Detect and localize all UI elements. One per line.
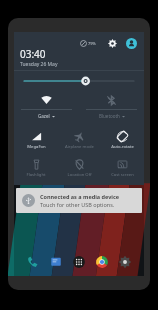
button[interactable]: Chrome	[93, 253, 111, 271]
staticText: Tuesday 26 May	[20, 61, 58, 68]
staticText: Auto-rotate	[111, 144, 134, 150]
button[interactable]: Connected as a media device	[16, 188, 142, 213]
staticText: Gazel	[38, 113, 50, 119]
staticText: 03:40	[20, 47, 46, 61]
button[interactable]: Airplane mode	[58, 127, 101, 155]
staticText: Cast screen	[111, 172, 134, 178]
staticText: Airplane mode	[65, 144, 94, 150]
button[interactable]: Bluetooth	[79, 91, 144, 127]
button[interactable]: Flashlight	[14, 155, 58, 183]
staticText: Connected as a media device	[40, 193, 120, 200]
button[interactable]: Settings	[116, 253, 134, 271]
button[interactable]: Apps	[70, 253, 88, 271]
button[interactable]: Location Off	[58, 155, 101, 183]
button[interactable]: User profile	[124, 36, 138, 50]
staticText: 79%	[88, 41, 96, 46]
button[interactable]: Messaging	[47, 253, 65, 271]
button[interactable]: Auto-rotate	[101, 127, 144, 155]
staticText: Location Off	[67, 172, 92, 178]
staticText: Bluetooth	[99, 113, 120, 119]
button[interactable]: MegaFon	[14, 127, 58, 155]
staticText: Touch for other USB options.	[40, 201, 115, 208]
button[interactable]: 79%	[78, 38, 98, 49]
button[interactable]: Brightness	[24, 73, 134, 89]
button[interactable]: Cast screen	[101, 155, 144, 183]
button[interactable]: Settings	[105, 36, 119, 50]
staticText: Flashlight	[26, 172, 46, 178]
button[interactable]: Gazel	[14, 91, 79, 127]
staticText: MegaFon	[27, 144, 46, 150]
button[interactable]: Phone	[24, 253, 42, 271]
